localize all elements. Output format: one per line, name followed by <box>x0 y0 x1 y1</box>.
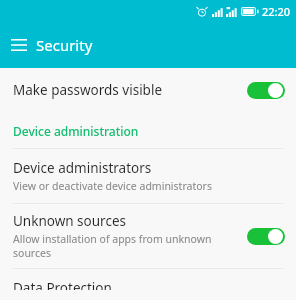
button[interactable]: Data Protection <box>0 269 296 300</box>
button[interactable]: Unknown sources <box>0 204 296 268</box>
button[interactable]: Open navigation menu <box>6 32 32 58</box>
staticText: Make passwords visible <box>13 81 163 99</box>
button[interactable]: Device administrators <box>0 149 296 203</box>
staticText: Unknown sources <box>13 212 126 230</box>
staticText: Allow installation of apps from unknown … <box>13 232 239 260</box>
button[interactable]: Make passwords visible <box>0 71 296 109</box>
staticText: Device administrators <box>13 159 152 177</box>
staticText: Data Protection <box>13 279 112 290</box>
other: On <box>247 228 285 245</box>
staticText: Security <box>36 35 93 55</box>
other: On <box>247 82 285 99</box>
staticText: View or deactivate device administrators <box>13 179 212 193</box>
staticText: Device administration <box>13 123 139 139</box>
staticText: 22:20 <box>262 4 291 19</box>
